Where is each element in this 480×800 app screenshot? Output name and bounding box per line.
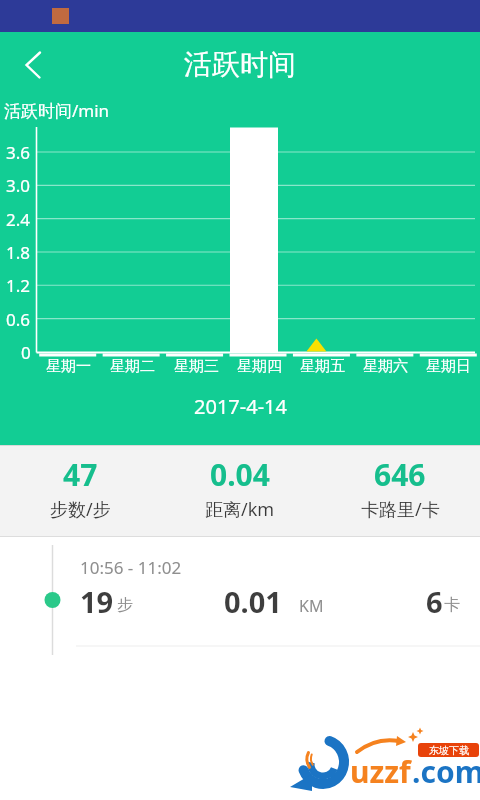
staticText: 东坡下载 (429, 744, 469, 757)
staticText: uzzf (350, 751, 411, 792)
staticText: 星期一 (46, 357, 91, 376)
staticText: 47 (63, 454, 98, 495)
button[interactable]: 47 (0, 446, 160, 522)
staticText: 活跃时间/min (4, 99, 110, 122)
button[interactable]: 0.04 (160, 446, 320, 522)
button[interactable]: 646 (320, 446, 480, 522)
staticText: 活跃时间 (184, 47, 296, 82)
staticText: 星期日 (426, 357, 471, 376)
staticText: 0.04 (210, 454, 270, 495)
staticText: 步 (117, 595, 133, 615)
staticText: 646 (374, 454, 426, 495)
staticText: 1.2 (6, 274, 31, 296)
staticText: 0.01 (224, 582, 282, 621)
staticText: 星期六 (363, 357, 408, 376)
staticText: 6 (426, 582, 443, 621)
staticText: 3.6 (6, 141, 31, 163)
staticText: KM (299, 595, 324, 617)
button[interactable]: 10:56 - 11:02 (0, 537, 480, 647)
staticText: 卡 (444, 595, 460, 615)
staticText: .com (412, 751, 480, 792)
staticText: 0 (21, 341, 31, 363)
staticText: 卡路里/卡 (361, 497, 440, 522)
staticText: 步数/步 (50, 497, 111, 522)
staticText: 19 (80, 582, 114, 621)
staticText: 2017-4-14 (194, 393, 287, 420)
staticText: 星期五 (300, 357, 345, 376)
staticText: 2.4 (6, 208, 31, 230)
staticText: 星期三 (174, 357, 219, 376)
button[interactable] (0, 32, 64, 96)
staticText: 1.8 (6, 241, 31, 263)
staticText: 10:56 - 11:02 (80, 556, 182, 579)
staticText: 0.6 (6, 308, 31, 330)
staticText: 星期二 (110, 357, 155, 376)
staticText: 星期四 (237, 357, 282, 376)
staticText: 3.0 (6, 174, 31, 196)
staticText: 距离/km (205, 497, 275, 522)
